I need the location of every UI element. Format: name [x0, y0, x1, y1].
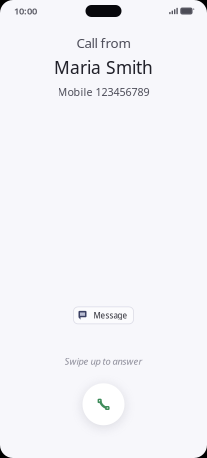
- staticText: Mobile 123456789: [57, 85, 149, 99]
- staticText: Swipe up to answer: [64, 355, 142, 367]
- staticText: 10:00: [14, 5, 37, 17]
- button[interactable]: Message: [73, 307, 133, 324]
- button[interactable]: Answer call: [79, 380, 127, 428]
- staticText: Maria Smith: [54, 56, 153, 79]
- staticText: Call from: [76, 34, 130, 52]
- staticText: Message: [93, 310, 127, 321]
